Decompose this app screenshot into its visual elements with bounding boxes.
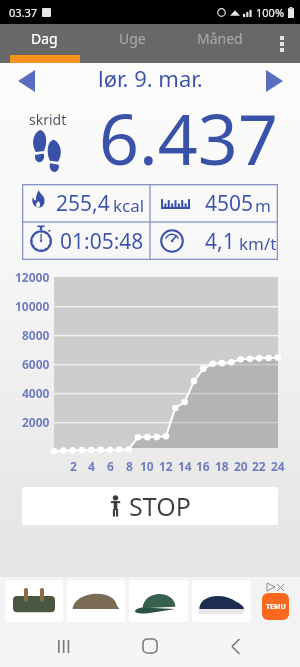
button[interactable]: Dag bbox=[0, 24, 88, 63]
button[interactable]: 4505 bbox=[150, 184, 278, 222]
staticText: 16 bbox=[196, 458, 210, 474]
staticText: 6.437 bbox=[99, 90, 278, 185]
button[interactable]: 255,4 bbox=[22, 184, 150, 222]
staticText: 12000 bbox=[15, 269, 50, 285]
staticText: 10 bbox=[140, 458, 154, 474]
staticText: 24 bbox=[271, 458, 285, 474]
button[interactable]: 01:05:48 bbox=[22, 222, 150, 260]
staticText: 14 bbox=[178, 458, 192, 474]
button[interactable]: Previous day bbox=[10, 65, 42, 97]
staticText: 12 bbox=[159, 458, 173, 474]
staticText: skridt bbox=[29, 110, 67, 129]
staticText: 8 bbox=[126, 458, 133, 474]
staticText: 4,1 bbox=[205, 227, 235, 256]
staticText: TEMU bbox=[266, 602, 286, 612]
staticText: kcal bbox=[113, 194, 145, 217]
staticText: 01:05:48 bbox=[60, 227, 144, 256]
staticText: STOP bbox=[129, 489, 191, 523]
staticText: 6000 bbox=[22, 356, 50, 372]
staticText: 100% bbox=[256, 5, 285, 20]
staticText: lør. 9. mar. bbox=[98, 63, 203, 93]
staticText: Dag bbox=[31, 29, 58, 48]
button[interactable]: 4,1 bbox=[150, 222, 278, 260]
button[interactable]: Next day bbox=[258, 65, 290, 97]
staticText: 10000 bbox=[15, 298, 50, 314]
button[interactable]: Home bbox=[128, 625, 172, 667]
button[interactable] bbox=[129, 580, 188, 622]
staticText: 6 bbox=[107, 458, 114, 474]
staticText: 4505 bbox=[205, 189, 254, 218]
button[interactable] bbox=[5, 580, 63, 622]
button[interactable] bbox=[192, 580, 251, 622]
staticText: Uge bbox=[119, 29, 146, 48]
staticText: km/t bbox=[239, 232, 277, 255]
staticText: 22 bbox=[252, 458, 266, 474]
staticText: 4 bbox=[88, 458, 95, 474]
staticText: 03.37 bbox=[9, 5, 38, 20]
button[interactable] bbox=[67, 580, 125, 622]
button[interactable]: Uge bbox=[88, 24, 176, 63]
button[interactable]: STOP bbox=[22, 487, 278, 525]
staticText: 2000 bbox=[22, 414, 50, 430]
staticText: Måned bbox=[197, 29, 243, 48]
staticText: 255,4 bbox=[56, 189, 110, 218]
button[interactable]: More options bbox=[264, 24, 300, 63]
staticText: 2 bbox=[70, 458, 77, 474]
button[interactable]: Måned bbox=[176, 24, 264, 63]
staticText: 20 bbox=[234, 458, 248, 474]
staticText: 4000 bbox=[22, 385, 50, 401]
staticText: 18 bbox=[215, 458, 229, 474]
button[interactable]: Recent apps bbox=[42, 625, 86, 667]
staticText: m bbox=[255, 194, 271, 217]
staticText: 8000 bbox=[22, 327, 50, 343]
button[interactable]: Back bbox=[214, 625, 258, 667]
